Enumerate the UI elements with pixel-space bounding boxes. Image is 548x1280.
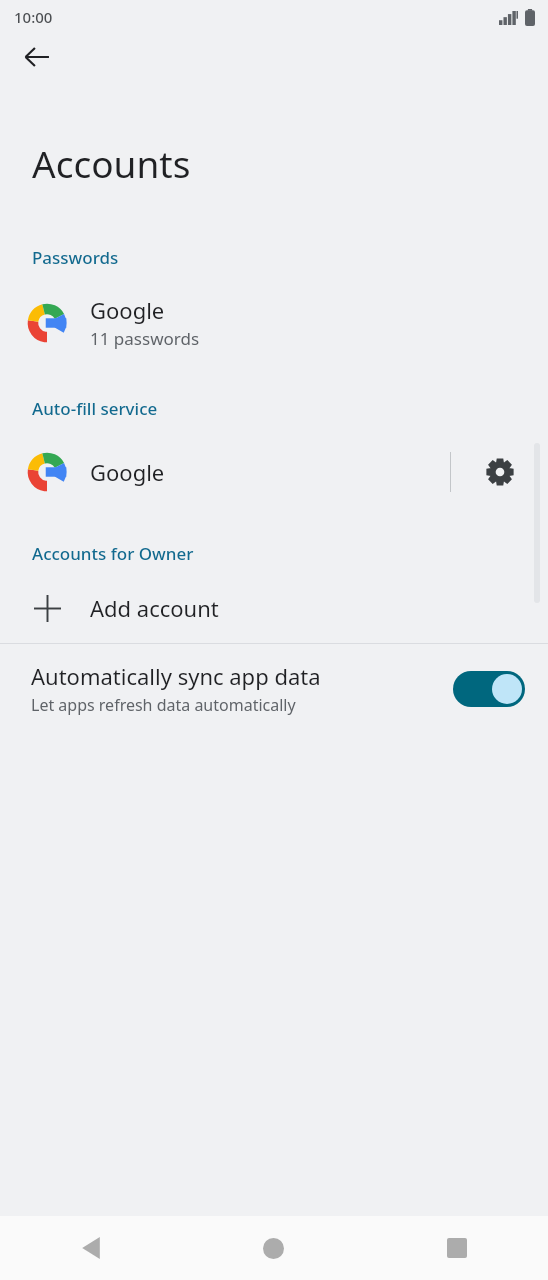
staticText: Auto-fill service: [32, 397, 158, 420]
button[interactable]: Autofill settings: [451, 444, 548, 500]
staticText: 11 passwords: [90, 327, 200, 350]
staticText: Google: [90, 295, 165, 325]
button[interactable]: Google: [0, 444, 450, 500]
staticText: Accounts for Owner: [32, 542, 194, 565]
button[interactable]: Add account: [0, 587, 548, 629]
staticText: Let apps refresh data automatically: [31, 694, 296, 716]
button[interactable]: Home: [182, 1216, 365, 1280]
staticText: Accounts: [32, 138, 191, 188]
button[interactable]: Back: [14, 34, 60, 80]
staticText: Google: [90, 457, 165, 487]
button[interactable]: Automatically sync app data: [0, 644, 548, 735]
staticText: 10:00: [14, 7, 53, 27]
staticText: Passwords: [32, 246, 119, 269]
button[interactable]: Back: [0, 1216, 182, 1280]
staticText: Add account: [90, 593, 219, 623]
staticText: Automatically sync app data: [31, 661, 321, 691]
button[interactable]: Google: [0, 295, 548, 350]
button[interactable]: Recent apps: [365, 1216, 548, 1280]
